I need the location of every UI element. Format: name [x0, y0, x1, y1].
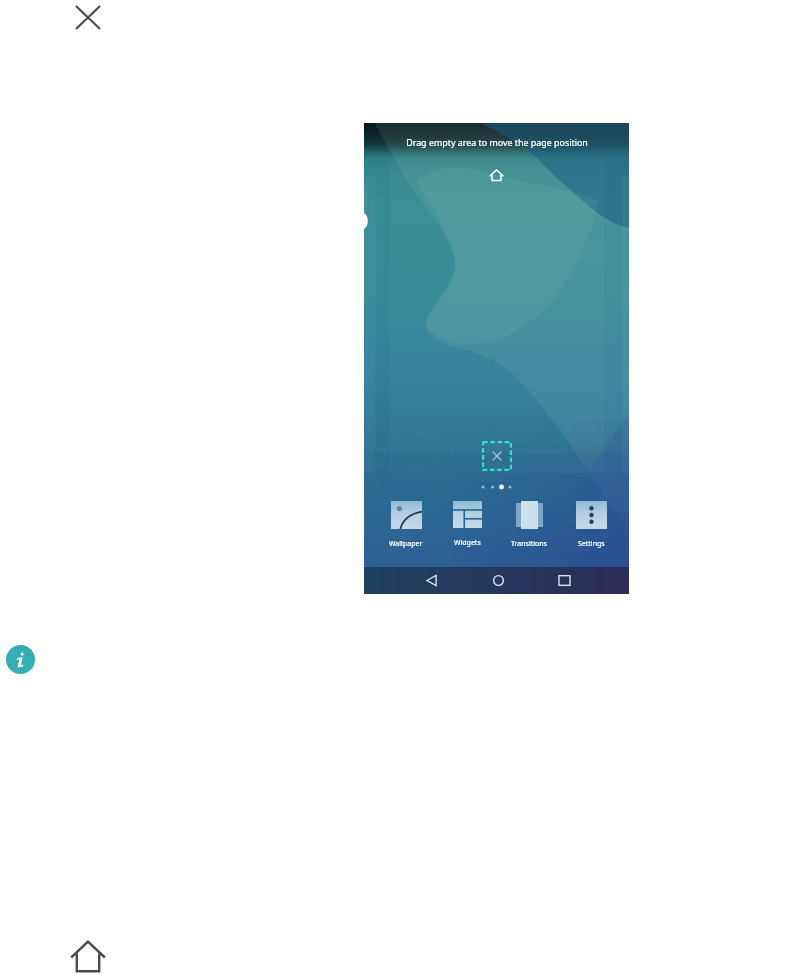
staticText: Drag empty area to move the page positio…: [406, 136, 588, 148]
staticText: Wallpaper: [389, 539, 423, 549]
staticText: Transitions: [511, 539, 547, 549]
button[interactable]: Home: [71, 939, 105, 973]
button[interactable]: Wallpaper: [379, 496, 433, 550]
button[interactable]: Info: [6, 645, 35, 674]
button[interactable]: Close: [70, 0, 105, 35]
button[interactable]: Transitions: [502, 496, 556, 550]
button[interactable]: Back: [418, 567, 444, 594]
button[interactable]: Set as default home screen: [488, 167, 505, 184]
button[interactable]: Widgets: [440, 496, 494, 550]
button[interactable]: Home: [485, 567, 511, 594]
button[interactable]: Settings: [564, 496, 618, 550]
button[interactable]: Delete page: [482, 441, 512, 471]
staticText: Settings: [578, 539, 605, 549]
staticText: Widgets: [454, 538, 481, 548]
button[interactable]: Recents: [551, 567, 577, 594]
